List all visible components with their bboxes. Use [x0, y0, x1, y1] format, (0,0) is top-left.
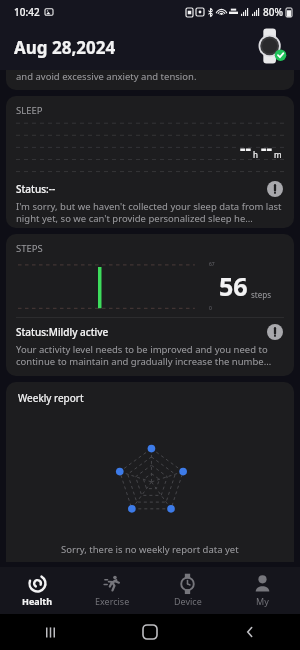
staticText: Health	[22, 595, 53, 607]
button[interactable]: Device	[150, 567, 225, 614]
button[interactable]: My	[225, 567, 300, 614]
button[interactable]: Back	[200, 614, 300, 650]
staticText: 80%	[263, 5, 283, 19]
staticText: 10:42	[14, 5, 40, 19]
button[interactable]: and avoid excessive anxiety and tension.	[6, 70, 294, 90]
staticText: Status:Mildly active	[16, 325, 109, 339]
button[interactable]: STEPS	[6, 234, 294, 376]
staticText: and avoid excessive anxiety and tension.	[16, 70, 197, 83]
staticText: Status:--	[16, 182, 56, 196]
staticText: 0	[209, 305, 212, 312]
staticText: STEPS	[16, 242, 43, 255]
staticText: Device	[174, 595, 202, 607]
staticText: m	[272, 149, 282, 160]
staticText: Aug 28,2024	[14, 36, 116, 59]
staticText: I'm sorry, but we haven't collected your…	[16, 200, 282, 225]
button[interactable]: Information	[267, 181, 283, 197]
staticText: --	[261, 137, 272, 160]
staticText: 67	[209, 261, 215, 268]
staticText: Your activity level needs to be improved…	[16, 343, 282, 368]
button[interactable]: Home	[100, 614, 200, 650]
staticText: 56	[219, 269, 248, 303]
staticText: --	[240, 137, 251, 160]
button[interactable]: Recent apps	[0, 614, 100, 650]
staticText: Weekly report	[18, 391, 84, 405]
staticText: Exercise	[95, 595, 130, 607]
staticText: SLEEP	[16, 104, 43, 117]
button[interactable]: SLEEP	[6, 96, 294, 228]
button[interactable]: Exercise	[75, 567, 150, 614]
button[interactable]: Weekly report	[6, 382, 294, 562]
staticText: My	[256, 595, 269, 607]
staticText: Sorry, there is no weekly report data ye…	[61, 543, 239, 556]
button[interactable]: Connected watch	[254, 30, 288, 64]
button[interactable]: Health	[0, 567, 75, 614]
staticText: steps	[251, 289, 271, 300]
button[interactable]: Information	[267, 324, 283, 340]
staticText: h	[251, 149, 261, 160]
